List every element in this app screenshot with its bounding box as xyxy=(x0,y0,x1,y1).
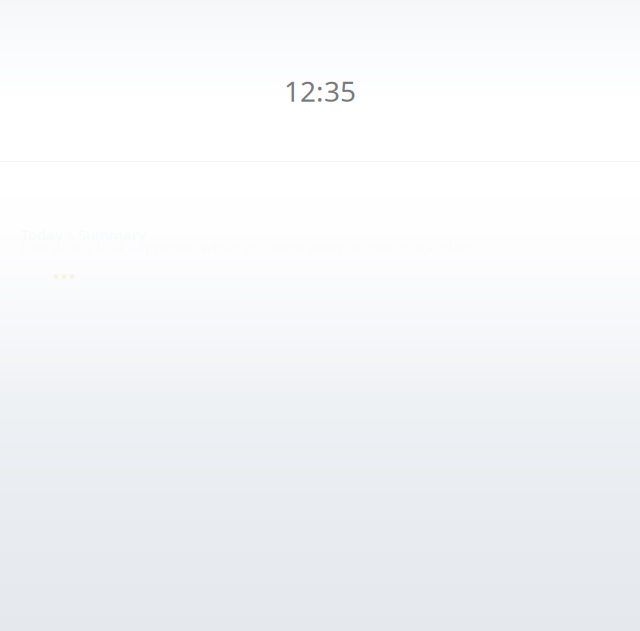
staticText: 12:35 xyxy=(284,72,356,110)
staticText: ★★★ xyxy=(52,271,76,282)
